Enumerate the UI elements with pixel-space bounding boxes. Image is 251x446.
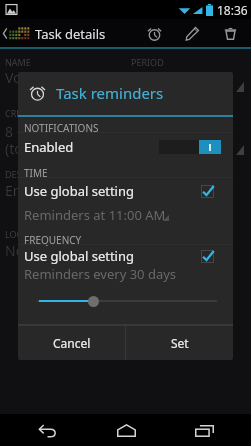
staticText: Cancel (53, 335, 91, 351)
staticText: NOTIFICATIONS (24, 121, 99, 135)
button[interactable]: Reminders at 11:00 AM (18, 202, 233, 224)
staticText: FREQUENCY (24, 233, 82, 247)
staticText: LOCATION (5, 228, 50, 240)
button[interactable]: Reminders (135, 19, 173, 47)
button[interactable]: Enabled (18, 134, 233, 160)
button[interactable]: Edit (173, 19, 211, 47)
button[interactable]: Task reminders (18, 72, 233, 115)
button[interactable]: Recents (173, 414, 235, 446)
button[interactable]: Back (16, 414, 78, 446)
button[interactable]: Cancel (18, 326, 125, 360)
button[interactable]: Home (95, 414, 157, 446)
button[interactable]: Navigate up (0, 19, 30, 47)
button[interactable]: Use global setting (18, 180, 233, 202)
staticText: Reminders at 11:00 AM (24, 206, 166, 224)
button[interactable]: Set (126, 326, 233, 360)
button[interactable]: Delete (211, 19, 249, 47)
staticText: CREATED (5, 107, 43, 119)
staticText: TIME (24, 166, 48, 180)
button[interactable]: Reminders every 30 days (18, 261, 233, 283)
staticText: None (5, 241, 41, 260)
staticText: 8 Oct 2014 (5, 122, 76, 141)
staticText: NAME (5, 56, 31, 68)
staticText: Enabled (24, 138, 74, 156)
staticText: 18:36 (217, 2, 248, 18)
staticText: Use global setting (24, 247, 135, 265)
staticText: DESCRIPTION (5, 168, 64, 180)
staticText: Use global setting (24, 182, 135, 200)
staticText: Task reminders (56, 83, 164, 103)
staticText: PERIOD (131, 56, 164, 68)
staticText: (today) (5, 139, 51, 158)
staticText: Empty (5, 181, 47, 200)
staticText: Voda (5, 68, 39, 87)
staticText: Reminders every 30 days (24, 265, 177, 283)
staticText: Set (171, 335, 189, 351)
button[interactable]: Use global setting (18, 245, 233, 267)
staticText: Task details (35, 25, 106, 43)
